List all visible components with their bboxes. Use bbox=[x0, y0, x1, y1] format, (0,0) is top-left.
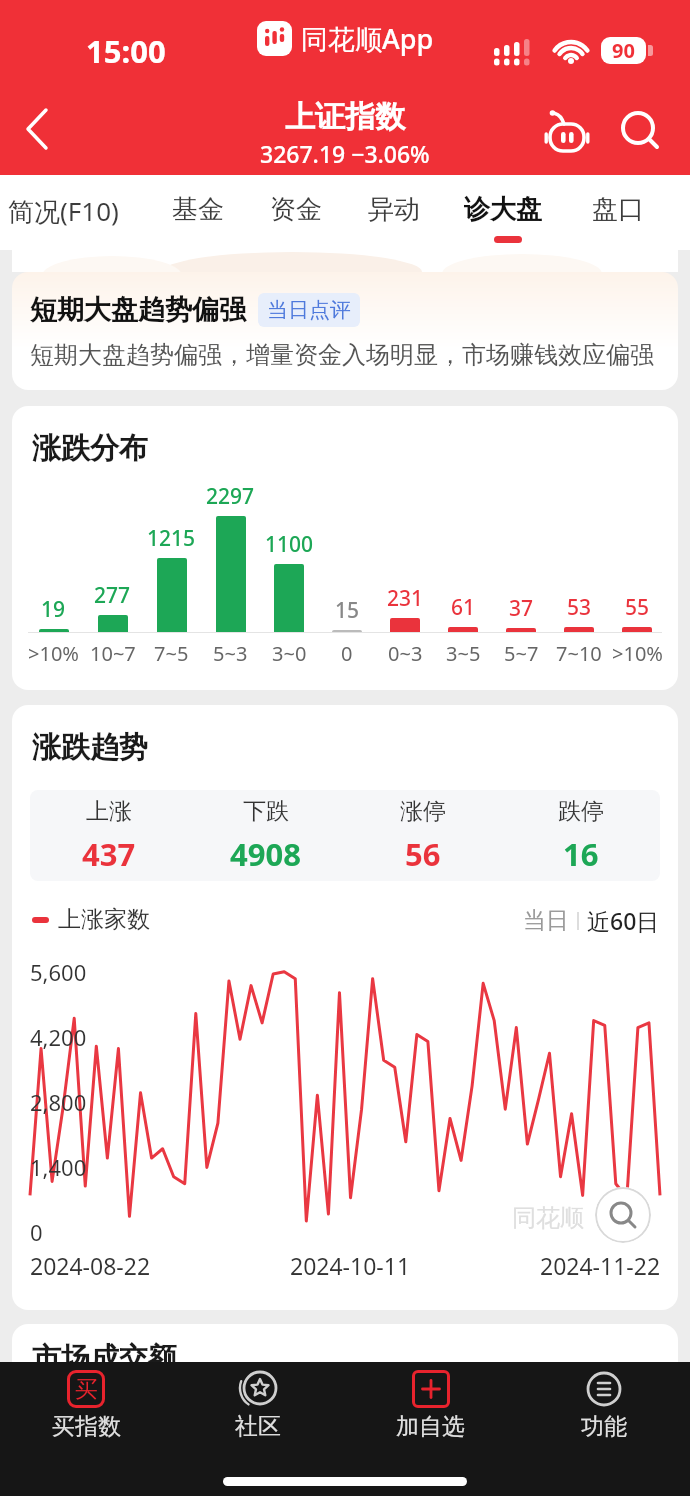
staticText: 同花顺App bbox=[301, 20, 434, 57]
staticText: 90 bbox=[612, 37, 635, 64]
button[interactable] bbox=[16, 102, 64, 158]
button[interactable] bbox=[595, 1187, 651, 1243]
staticText: >10% bbox=[28, 640, 79, 667]
staticText: 涨停 bbox=[400, 797, 446, 826]
staticText: 社区 bbox=[235, 1412, 281, 1441]
staticText: 4908 bbox=[230, 833, 301, 875]
staticText: 短期大盘趋势偏强 bbox=[30, 293, 246, 327]
staticText: 5~3 bbox=[213, 640, 248, 667]
staticText: 当日点评 bbox=[267, 297, 351, 323]
button[interactable]: 资金 bbox=[270, 193, 322, 226]
button[interactable] bbox=[538, 102, 592, 156]
staticText: 涨跌趋势 bbox=[32, 729, 148, 766]
staticText: 37 bbox=[509, 594, 534, 623]
staticText: 1215 bbox=[147, 524, 196, 553]
button[interactable]: 买 bbox=[0, 1362, 172, 1472]
button[interactable]: 加自选 bbox=[344, 1362, 517, 1472]
staticText: >10% bbox=[612, 640, 663, 667]
staticText: 2024-08-22 bbox=[30, 1250, 151, 1281]
staticText: 上涨 bbox=[86, 797, 132, 826]
staticText: 1,400 bbox=[30, 1152, 87, 1182]
staticText: 55 bbox=[625, 593, 650, 622]
button[interactable]: 社区 bbox=[172, 1362, 344, 1472]
staticText: 10~7 bbox=[90, 640, 136, 667]
staticText: 16 bbox=[563, 833, 599, 875]
button[interactable]: 盘口 bbox=[592, 193, 644, 226]
staticText: 买指数 bbox=[52, 1412, 121, 1441]
staticText: 2,800 bbox=[30, 1087, 87, 1117]
staticText: 0 bbox=[341, 640, 353, 667]
staticText: 2024-11-22 bbox=[540, 1250, 661, 1281]
staticText: 437 bbox=[82, 833, 136, 875]
staticText: 买 bbox=[75, 1375, 98, 1404]
staticText: 1100 bbox=[265, 530, 314, 559]
staticText: 3~0 bbox=[272, 640, 307, 667]
staticText: 3~5 bbox=[446, 640, 481, 667]
button[interactable]: 基金 bbox=[172, 193, 224, 226]
staticText: 2297 bbox=[206, 482, 255, 511]
staticText: 15:00 bbox=[86, 30, 166, 72]
button[interactable]: 简况(F10) bbox=[8, 193, 119, 229]
staticText: 7~5 bbox=[154, 640, 189, 667]
staticText: 加自选 bbox=[396, 1412, 465, 1441]
staticText: 跌停 bbox=[558, 797, 604, 826]
staticText: 4,200 bbox=[30, 1022, 87, 1052]
staticText: 上涨家数 bbox=[58, 905, 150, 934]
staticText: 3267.19 −3.06% bbox=[260, 138, 430, 169]
staticText: 7~10 bbox=[556, 640, 602, 667]
staticText: 2024-10-11 bbox=[290, 1250, 411, 1281]
staticText: 15 bbox=[335, 596, 360, 625]
button[interactable]: 近60日 bbox=[587, 905, 660, 936]
staticText: 上证指数 bbox=[285, 98, 405, 136]
staticText: 同花顺 bbox=[512, 1203, 584, 1233]
staticText: 5~7 bbox=[504, 640, 539, 667]
staticText: 53 bbox=[567, 593, 592, 622]
button[interactable]: 异动 bbox=[368, 193, 420, 226]
staticText: 231 bbox=[387, 584, 424, 613]
staticText: 0 bbox=[30, 1217, 43, 1247]
staticText: 5,600 bbox=[30, 957, 87, 987]
staticText: 市场成交额 bbox=[32, 1340, 177, 1362]
button[interactable]: 诊大盘 bbox=[464, 193, 542, 226]
staticText: 61 bbox=[451, 593, 476, 622]
button[interactable]: 短期大盘趋势偏强 bbox=[12, 272, 678, 390]
staticText: 19 bbox=[41, 595, 66, 624]
button[interactable]: 当日 bbox=[523, 906, 569, 935]
button[interactable] bbox=[616, 106, 664, 154]
staticText: 277 bbox=[94, 581, 131, 610]
button[interactable]: 功能 bbox=[517, 1362, 690, 1472]
staticText: 下跌 bbox=[243, 797, 289, 826]
staticText: 56 bbox=[405, 833, 441, 875]
staticText: 功能 bbox=[581, 1412, 627, 1441]
staticText: 0~3 bbox=[388, 640, 423, 667]
staticText: 涨跌分布 bbox=[32, 430, 148, 467]
staticText: 短期大盘趋势偏强，增量资金入场明显，市场赚钱效应偏强 bbox=[30, 340, 654, 370]
